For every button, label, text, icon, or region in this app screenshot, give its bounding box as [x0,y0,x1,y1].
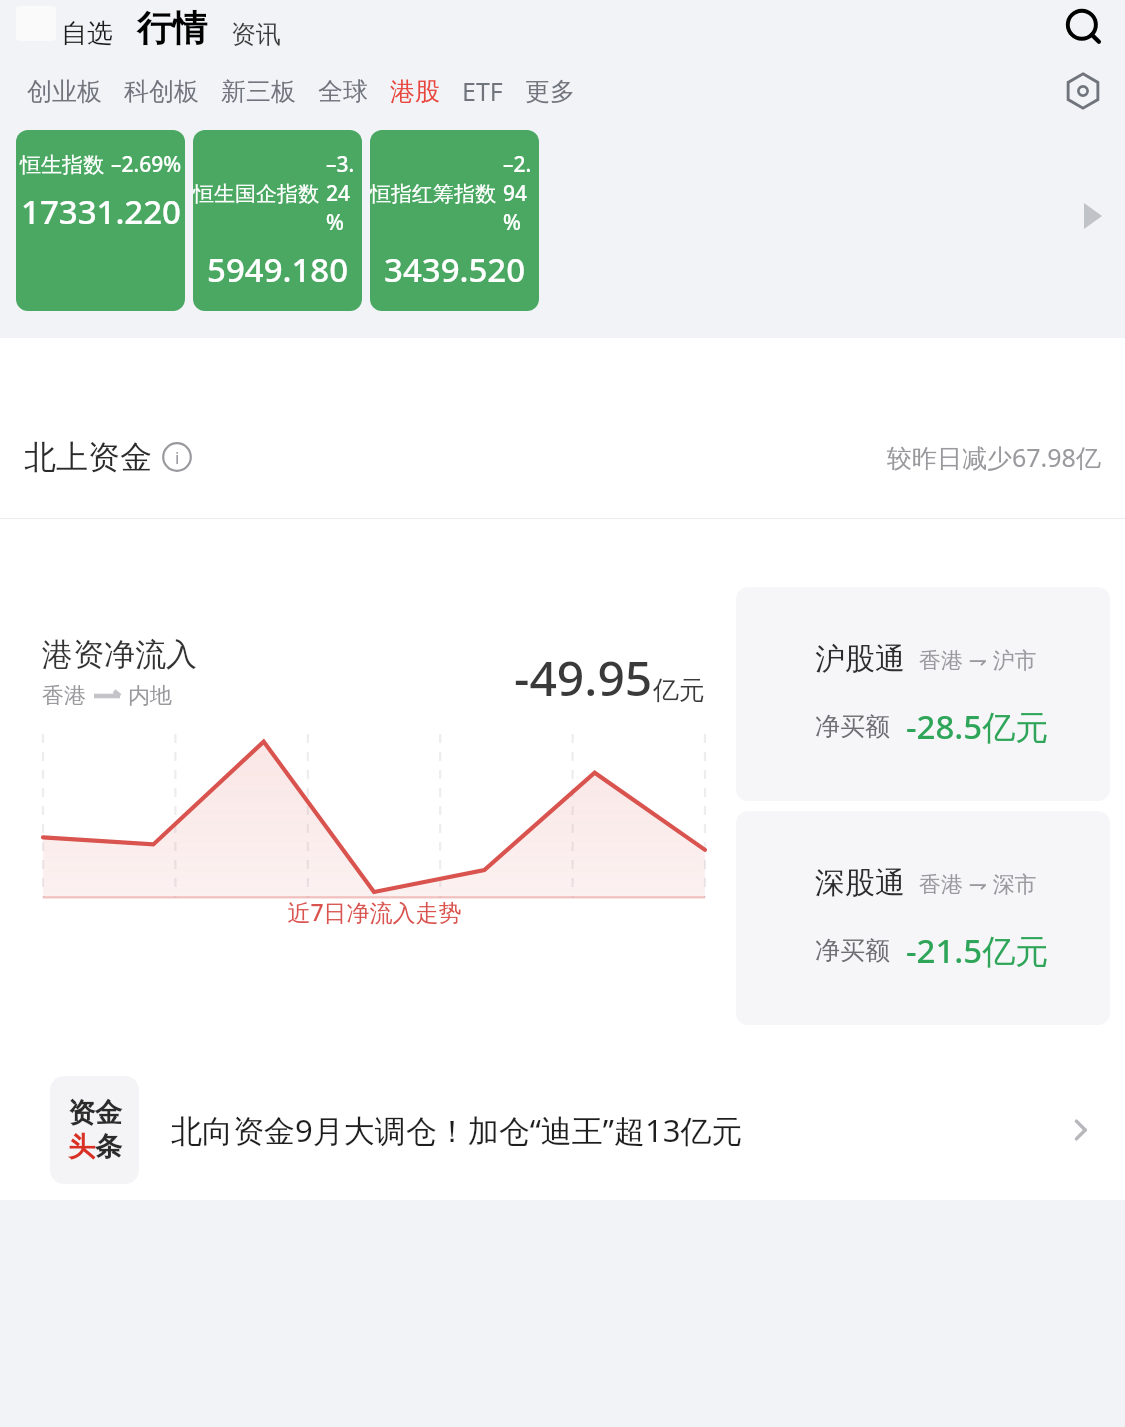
staticText: 香港 ⇁ 深市 [919,868,1037,898]
button[interactable]: 全球 [307,70,379,113]
staticText: 创业板 [27,76,102,107]
staticText: 行情 [137,6,207,50]
staticText: 科创板 [124,76,199,107]
staticText: 深股通 [815,864,905,902]
staticText: –2.94% [503,150,539,237]
staticText: 北向资金9月大调仓！加仓“迪王”超13亿元 [171,1109,743,1151]
other: More [1067,1113,1101,1147]
staticText: -28.5亿元 [906,704,1049,749]
staticText: 头 [68,1130,95,1164]
button[interactable]: 创业板 [16,70,113,113]
button[interactable]: 新三板 [210,70,307,113]
staticText: 新三板 [221,76,296,107]
staticText: 资讯 [231,19,281,50]
staticText: 较昨日减少67.98亿 [887,440,1101,474]
button[interactable]: Search [1057,1,1111,55]
button[interactable]: 资讯 [227,19,285,50]
staticText: 恒生指数 [20,152,104,178]
staticText: 恒指红筹指数 [370,181,496,207]
button[interactable]: 更多 [514,70,586,113]
staticText: -49.95 [514,645,653,710]
staticText: 北上资金 [24,437,152,477]
staticText: 净买额 [815,711,890,742]
staticText: 沪股通 [815,640,905,678]
staticText: 资金 [68,1096,122,1130]
staticText: 港股 [390,76,440,107]
button[interactable]: 北上资金 [0,396,1125,518]
staticText: 内地 [128,682,172,710]
staticText: –3.24% [326,150,362,237]
button[interactable]: 行情 [133,6,211,50]
button[interactable]: 恒生指数 [16,130,185,311]
staticText: 全球 [318,76,368,107]
staticText: 近7日净流入走势 [287,896,462,927]
button[interactable]: 资金 [0,1060,1125,1200]
staticText: 港资净流入 [42,635,197,674]
staticText: 17331.220 [21,189,181,234]
staticText: 香港 [42,682,86,710]
staticText: 净买额 [815,935,890,966]
staticText: i [175,446,180,469]
button[interactable]: 科创板 [113,70,210,113]
staticText: 条 [95,1130,122,1164]
button[interactable]: 恒生国企指数 [193,130,362,311]
button[interactable]: 沪股通 [736,587,1110,801]
staticText: ETF [462,74,503,108]
button[interactable]: 恒指红筹指数 [370,130,539,311]
staticText: 5949.180 [207,247,349,292]
button[interactable]: Settings [1057,65,1109,117]
staticText: 恒生国企指数 [193,181,319,207]
button[interactable]: 深股通 [736,811,1110,1025]
staticText: 香港 ⇁ 沪市 [919,644,1037,674]
button[interactable]: ETF [451,68,514,114]
staticText: –2.69% [111,150,182,179]
button[interactable]: 港股 [379,70,451,113]
staticText: 更多 [525,76,575,107]
button[interactable]: 自选 [57,17,117,50]
staticText: 3439.520 [384,247,526,292]
button[interactable]: 港资净流入 [15,587,727,1025]
staticText: 亿元 [653,674,705,707]
staticText: 自选 [61,17,113,50]
staticText: -21.5亿元 [906,928,1049,973]
